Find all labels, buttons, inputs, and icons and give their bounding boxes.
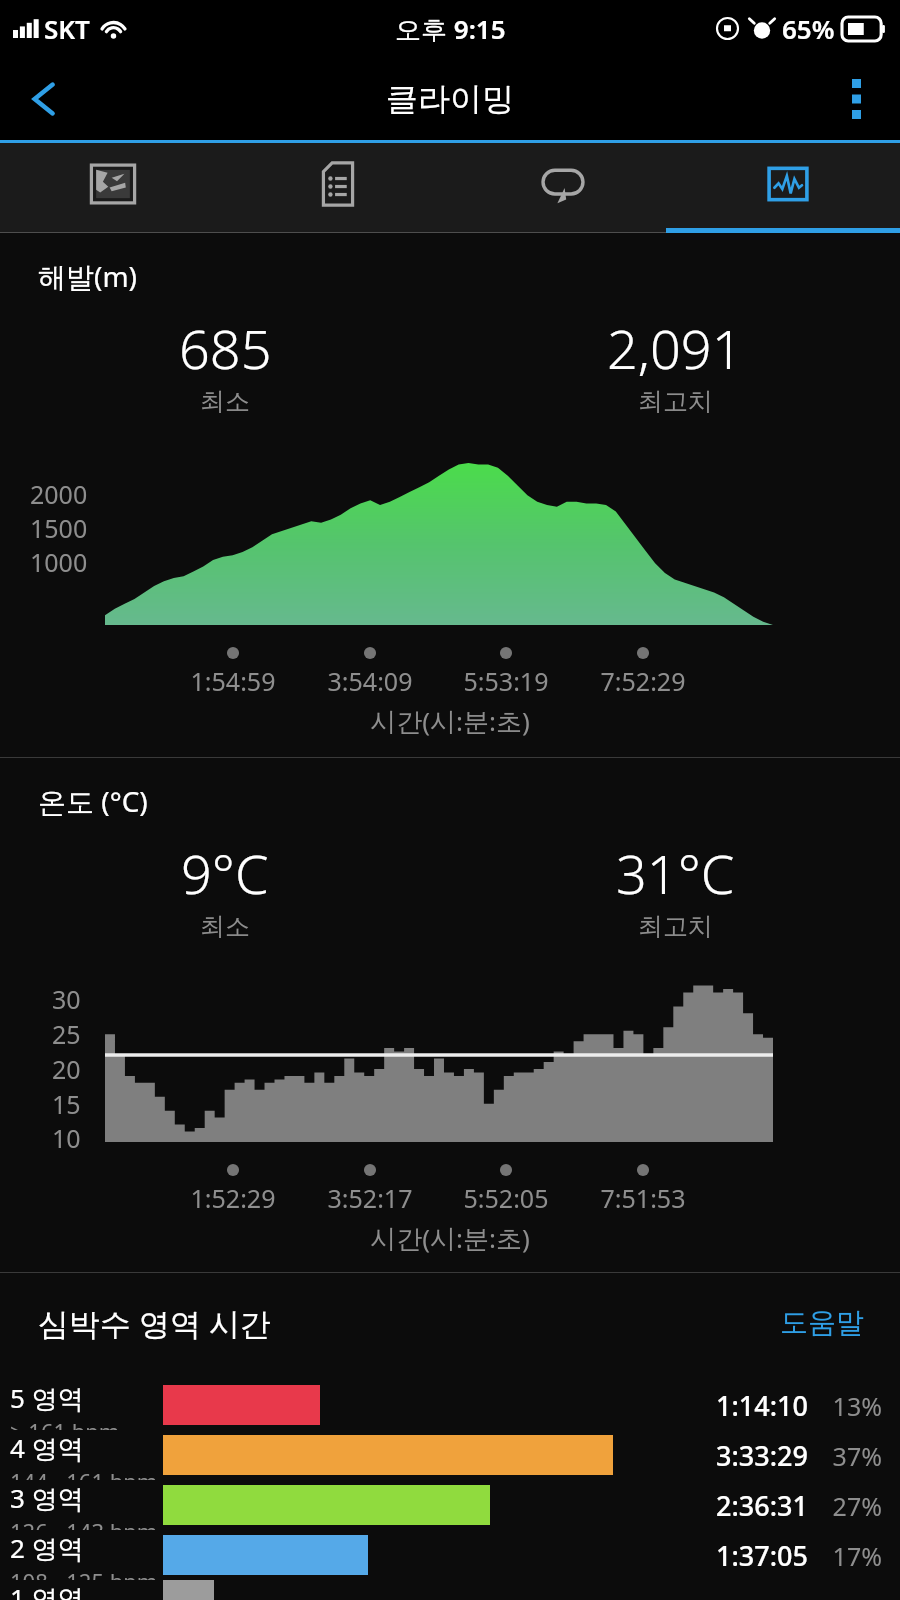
staticText: 685: [179, 311, 272, 385]
staticText: 5:53:19: [436, 664, 576, 698]
button[interactable]: Back: [0, 57, 88, 140]
staticText: 17%: [826, 1539, 882, 1573]
staticText: 2,091: [607, 311, 743, 385]
staticText: 108 - 125 bpm: [10, 1566, 158, 1580]
staticText: 1:14:10: [716, 1387, 808, 1424]
staticText: 9°C: [181, 836, 269, 910]
staticText: 최소: [200, 911, 250, 942]
staticText: 37%: [826, 1439, 882, 1473]
staticText: 30: [52, 982, 81, 1016]
staticText: 2 영역: [10, 1530, 84, 1566]
staticText: 3:54:09: [300, 664, 440, 698]
staticText: 심박수 영역 시간: [38, 1302, 272, 1344]
button[interactable]: 4 영역: [0, 1430, 900, 1480]
staticText: 온도 (°C): [38, 782, 148, 820]
staticText: 3:33:29: [716, 1437, 808, 1474]
staticText: 7:52:29: [573, 664, 713, 698]
staticText: > 161 bpm: [10, 1416, 120, 1430]
button[interactable]: Map: [0, 143, 225, 233]
staticText: 1 영역: [10, 1580, 84, 1600]
button[interactable]: Charts: [675, 143, 900, 233]
staticText: 144 - 161 bpm: [10, 1466, 158, 1480]
staticText: 시간(시:분:초): [0, 703, 900, 739]
staticText: 1:52:29: [163, 1181, 303, 1215]
staticText: 65%: [782, 11, 835, 46]
staticText: 15: [52, 1087, 81, 1121]
staticText: 최소: [200, 386, 250, 417]
button[interactable]: 5 영역: [0, 1380, 900, 1430]
staticText: 해발(m): [38, 257, 137, 295]
staticText: 1000: [30, 545, 88, 579]
button[interactable]: More options: [812, 57, 900, 140]
staticText: 1500: [30, 511, 88, 545]
staticText: 20: [52, 1052, 81, 1086]
staticText: 126 - 143 bpm: [10, 1516, 158, 1530]
staticText: 3:52:17: [300, 1181, 440, 1215]
staticText: 10: [52, 1121, 81, 1155]
staticText: 2000: [30, 477, 88, 511]
button[interactable]: 도움말: [774, 1299, 870, 1346]
staticText: 도움말: [780, 1305, 864, 1340]
button[interactable]: Details: [225, 143, 450, 233]
staticText: 13%: [826, 1389, 882, 1423]
button[interactable]: Laps: [450, 143, 675, 233]
button[interactable]: 2 영역: [0, 1530, 900, 1580]
staticText: 5 영역: [10, 1380, 84, 1416]
button[interactable]: 3 영역: [0, 1480, 900, 1530]
button[interactable]: 1 영역: [0, 1580, 900, 1600]
staticText: 31°C: [616, 836, 735, 910]
staticText: 최고치: [638, 911, 713, 942]
staticText: 1:37:05: [716, 1537, 808, 1574]
staticText: 7:51:53: [573, 1181, 713, 1215]
staticText: 1:54:59: [163, 664, 303, 698]
staticText: 25: [52, 1017, 81, 1051]
staticText: 오후 9:15: [395, 11, 506, 47]
staticText: 4 영역: [10, 1430, 84, 1466]
staticText: 5:52:05: [436, 1181, 576, 1215]
staticText: 클라이밍: [386, 79, 514, 119]
staticText: 시간(시:분:초): [0, 1220, 900, 1256]
staticText: 27%: [826, 1489, 882, 1523]
staticText: 최고치: [638, 386, 713, 417]
staticText: 2:36:31: [716, 1487, 808, 1524]
staticText: SKT: [44, 11, 90, 46]
staticText: 3 영역: [10, 1480, 84, 1516]
